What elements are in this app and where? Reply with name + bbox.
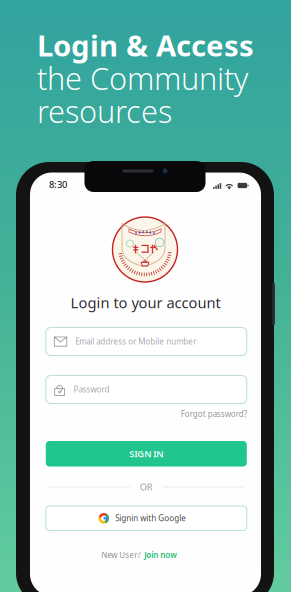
- staticText: Password: [73, 384, 109, 395]
- button[interactable]: Password: [46, 375, 247, 403]
- staticText: SIGN IN: [129, 448, 163, 460]
- staticText: Signin with Google: [115, 513, 186, 523]
- staticText: OR: [140, 481, 153, 493]
- staticText: the Community: [37, 58, 248, 98]
- staticText: 8:30: [49, 178, 67, 191]
- staticText: Forgot password?: [181, 409, 247, 419]
- button[interactable]: Forgot password?: [46, 408, 247, 419]
- staticText: Email address or Mobile number: [75, 336, 196, 347]
- staticText: resources: [37, 91, 172, 131]
- button[interactable]: Join now: [144, 550, 177, 560]
- button[interactable]: Signin with Google: [46, 506, 247, 530]
- staticText: New User?: [101, 550, 140, 560]
- button[interactable]: SIGN IN: [46, 441, 247, 466]
- staticText: Login & Access: [37, 25, 254, 64]
- button[interactable]: Email address or Mobile number: [46, 327, 247, 355]
- staticText: Login to your account: [70, 293, 220, 312]
- staticText: Join now: [144, 550, 177, 560]
